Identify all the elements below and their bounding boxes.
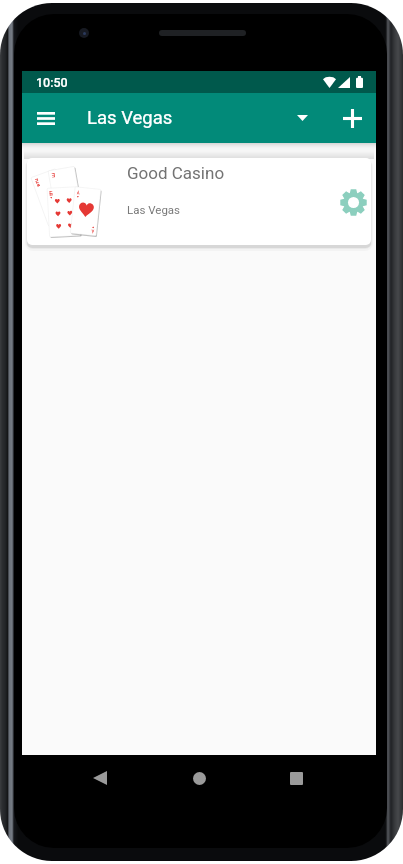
staticText: Good Casino [127, 163, 225, 183]
staticText: 10:50 [36, 75, 68, 90]
button[interactable]: Settings [333, 182, 371, 222]
button[interactable]: Home [177, 756, 221, 800]
button[interactable]: Recents [274, 756, 318, 800]
button[interactable]: Add [332, 98, 372, 138]
button[interactable]: Menu [22, 93, 69, 143]
button[interactable]: Show menu [284, 100, 320, 136]
staticText: Las Vegas [87, 107, 173, 129]
button[interactable]: Good Casino [27, 158, 371, 245]
button[interactable]: Back [78, 756, 122, 800]
staticText: Las Vegas [127, 203, 181, 216]
